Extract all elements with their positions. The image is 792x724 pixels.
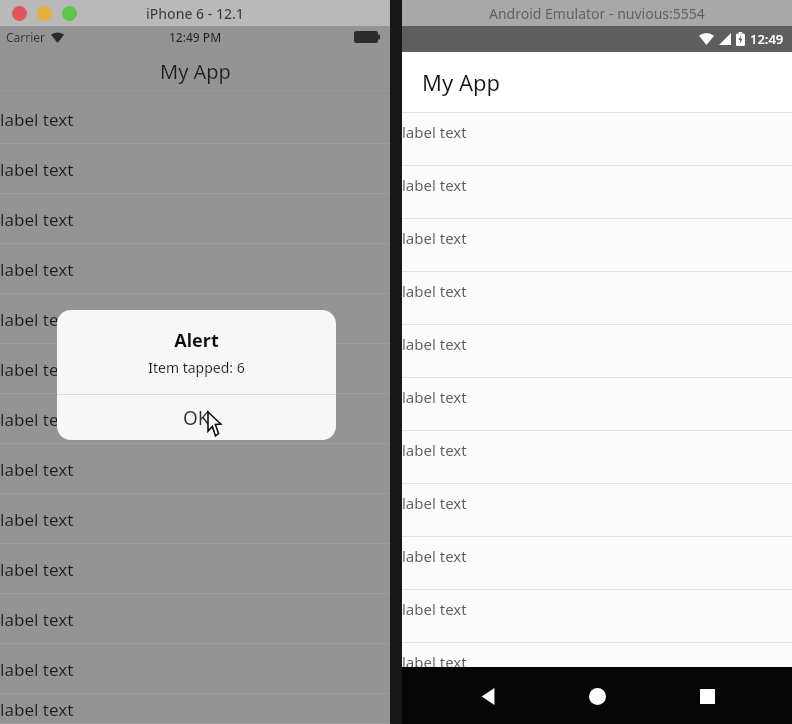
button[interactable]: label text bbox=[0, 144, 390, 194]
button[interactable]: label text bbox=[0, 344, 390, 394]
staticText: Item tapped: 6 bbox=[148, 358, 245, 377]
staticText: label text bbox=[402, 546, 467, 566]
button[interactable] bbox=[62, 6, 77, 21]
staticText: label text bbox=[0, 108, 74, 131]
staticText: label text bbox=[402, 387, 467, 407]
button[interactable]: Home bbox=[573, 672, 621, 720]
button[interactable]: label text bbox=[0, 494, 390, 544]
staticText: label text bbox=[0, 658, 74, 681]
button[interactable]: label text bbox=[402, 536, 792, 589]
staticText: Carrier bbox=[6, 29, 46, 45]
staticText: label text bbox=[0, 308, 74, 331]
staticText: label text bbox=[0, 608, 74, 631]
button[interactable]: label text bbox=[0, 644, 390, 694]
staticText: label text bbox=[0, 408, 74, 431]
button[interactable]: label text bbox=[402, 377, 792, 430]
staticText: label text bbox=[402, 599, 467, 619]
staticText: label text bbox=[0, 158, 74, 181]
button[interactable]: label text bbox=[0, 94, 390, 144]
staticText: Android Emulator - nuvious:5554 bbox=[489, 4, 705, 23]
button[interactable] bbox=[37, 6, 52, 21]
staticText: label text bbox=[402, 175, 467, 195]
button[interactable]: label text bbox=[402, 271, 792, 324]
button[interactable]: label text bbox=[402, 483, 792, 536]
button[interactable]: label text bbox=[402, 589, 792, 642]
button[interactable]: label text bbox=[402, 218, 792, 271]
button[interactable]: label text bbox=[0, 194, 390, 244]
staticText: 12:49 PM bbox=[169, 29, 222, 45]
staticText: label text bbox=[0, 208, 74, 231]
button[interactable]: label text bbox=[0, 544, 390, 594]
button[interactable]: label text bbox=[402, 642, 792, 667]
staticText: label text bbox=[0, 508, 74, 531]
button[interactable]: label text bbox=[0, 294, 390, 344]
staticText: label text bbox=[402, 440, 467, 460]
button[interactable] bbox=[12, 6, 27, 21]
button[interactable]: label text bbox=[0, 694, 390, 724]
button[interactable]: label text bbox=[0, 444, 390, 494]
staticText: label text bbox=[0, 258, 74, 281]
button[interactable]: label text bbox=[402, 112, 792, 165]
staticText: label text bbox=[402, 652, 467, 667]
button[interactable]: Back bbox=[464, 672, 512, 720]
staticText: label text bbox=[0, 358, 74, 381]
staticText: My App bbox=[160, 58, 231, 85]
staticText: 12:49 bbox=[750, 30, 784, 48]
button[interactable]: label text bbox=[0, 594, 390, 644]
staticText: label text bbox=[0, 458, 74, 481]
button[interactable]: label text bbox=[402, 324, 792, 377]
button[interactable]: label text bbox=[402, 430, 792, 483]
staticText: label text bbox=[402, 334, 467, 354]
staticText: label text bbox=[0, 698, 74, 721]
staticText: Alert bbox=[174, 328, 219, 353]
button[interactable]: label text bbox=[0, 244, 390, 294]
staticText: label text bbox=[402, 493, 467, 513]
staticText: label text bbox=[402, 228, 467, 248]
staticText: label text bbox=[402, 122, 467, 142]
staticText: My App bbox=[422, 67, 501, 97]
button[interactable]: OK bbox=[57, 395, 336, 440]
staticText: OK bbox=[183, 405, 210, 431]
button[interactable]: label text bbox=[0, 394, 390, 444]
button[interactable]: Recent apps bbox=[683, 672, 731, 720]
staticText: label text bbox=[402, 281, 467, 301]
staticText: iPhone 6 - 12.1 bbox=[146, 4, 244, 23]
button[interactable]: label text bbox=[402, 165, 792, 218]
staticText: label text bbox=[0, 558, 74, 581]
